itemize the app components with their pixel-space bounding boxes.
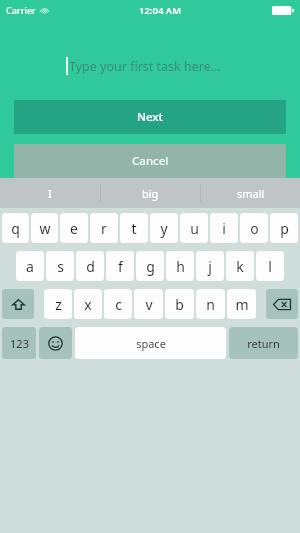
staticText: small <box>237 186 265 201</box>
staticText: return <box>247 336 280 351</box>
staticText: v <box>145 295 153 314</box>
button[interactable]: r <box>90 213 118 243</box>
staticText: j <box>208 257 212 276</box>
button[interactable]: return <box>229 327 298 359</box>
staticText: t <box>131 219 137 238</box>
button[interactable]: c <box>104 289 132 319</box>
staticText: d <box>86 257 95 276</box>
button[interactable]: small <box>201 178 300 208</box>
button[interactable]: I <box>0 178 100 208</box>
button[interactable]: s <box>46 251 74 281</box>
staticText: x <box>84 295 92 314</box>
staticText: g <box>146 257 155 276</box>
button[interactable]: Next <box>14 100 286 134</box>
button[interactable]: z <box>44 289 72 319</box>
staticText: big <box>142 186 159 201</box>
button[interactable]: g <box>136 251 164 281</box>
button[interactable]: o <box>240 213 268 243</box>
staticText: I <box>48 186 52 201</box>
button[interactable]: x <box>74 289 102 319</box>
staticText: i <box>222 219 226 238</box>
button[interactable]: i <box>210 213 238 243</box>
staticText: 123 <box>10 336 29 351</box>
staticText: Next <box>137 109 163 125</box>
staticText: Carrier <box>6 4 36 16</box>
button[interactable]: y <box>150 213 178 243</box>
staticText: b <box>175 295 184 314</box>
button[interactable]: n <box>196 289 225 319</box>
button[interactable]: v <box>134 289 163 319</box>
staticText: 12:04 AM <box>139 4 182 17</box>
button[interactable]: m <box>227 289 256 319</box>
button[interactable]: p <box>270 213 298 243</box>
button[interactable]: Emoji <box>39 327 72 359</box>
button[interactable]: u <box>180 213 208 243</box>
staticText: p <box>280 219 289 238</box>
button[interactable]: j <box>196 251 224 281</box>
staticText: c <box>115 295 122 314</box>
staticText: h <box>176 257 185 276</box>
staticText: s <box>57 257 64 276</box>
button[interactable]: k <box>226 251 254 281</box>
staticText: w <box>39 219 51 238</box>
staticText: space <box>136 336 166 351</box>
button[interactable]: e <box>60 213 88 243</box>
staticText: y <box>160 219 168 238</box>
staticText: Cancel <box>132 153 169 169</box>
button[interactable]: Backspace <box>266 289 298 319</box>
staticText: e <box>70 219 78 238</box>
staticText: o <box>250 219 259 238</box>
button[interactable]: Shift <box>2 289 34 319</box>
button[interactable]: 123 <box>2 327 36 359</box>
button[interactable]: b <box>165 289 194 319</box>
staticText: m <box>235 295 249 314</box>
staticText: Type your first task here... <box>69 58 221 75</box>
staticText: z <box>55 295 62 314</box>
button[interactable]: h <box>166 251 194 281</box>
staticText: u <box>190 219 199 238</box>
button[interactable]: big <box>101 178 200 208</box>
staticText: f <box>118 257 123 276</box>
staticText: q <box>11 219 20 238</box>
button[interactable]: l <box>256 251 284 281</box>
button[interactable]: Cancel <box>14 144 286 178</box>
button[interactable]: d <box>76 251 104 281</box>
staticText: n <box>206 295 215 314</box>
button[interactable]: t <box>120 213 148 243</box>
button[interactable]: space <box>75 327 226 359</box>
staticText: r <box>101 219 107 238</box>
staticText: l <box>268 257 272 276</box>
staticText: a <box>26 257 34 276</box>
button[interactable]: w <box>31 213 58 243</box>
button[interactable]: a <box>16 251 44 281</box>
button[interactable]: q <box>2 213 29 243</box>
staticText: k <box>236 257 244 276</box>
button[interactable]: f <box>106 251 134 281</box>
